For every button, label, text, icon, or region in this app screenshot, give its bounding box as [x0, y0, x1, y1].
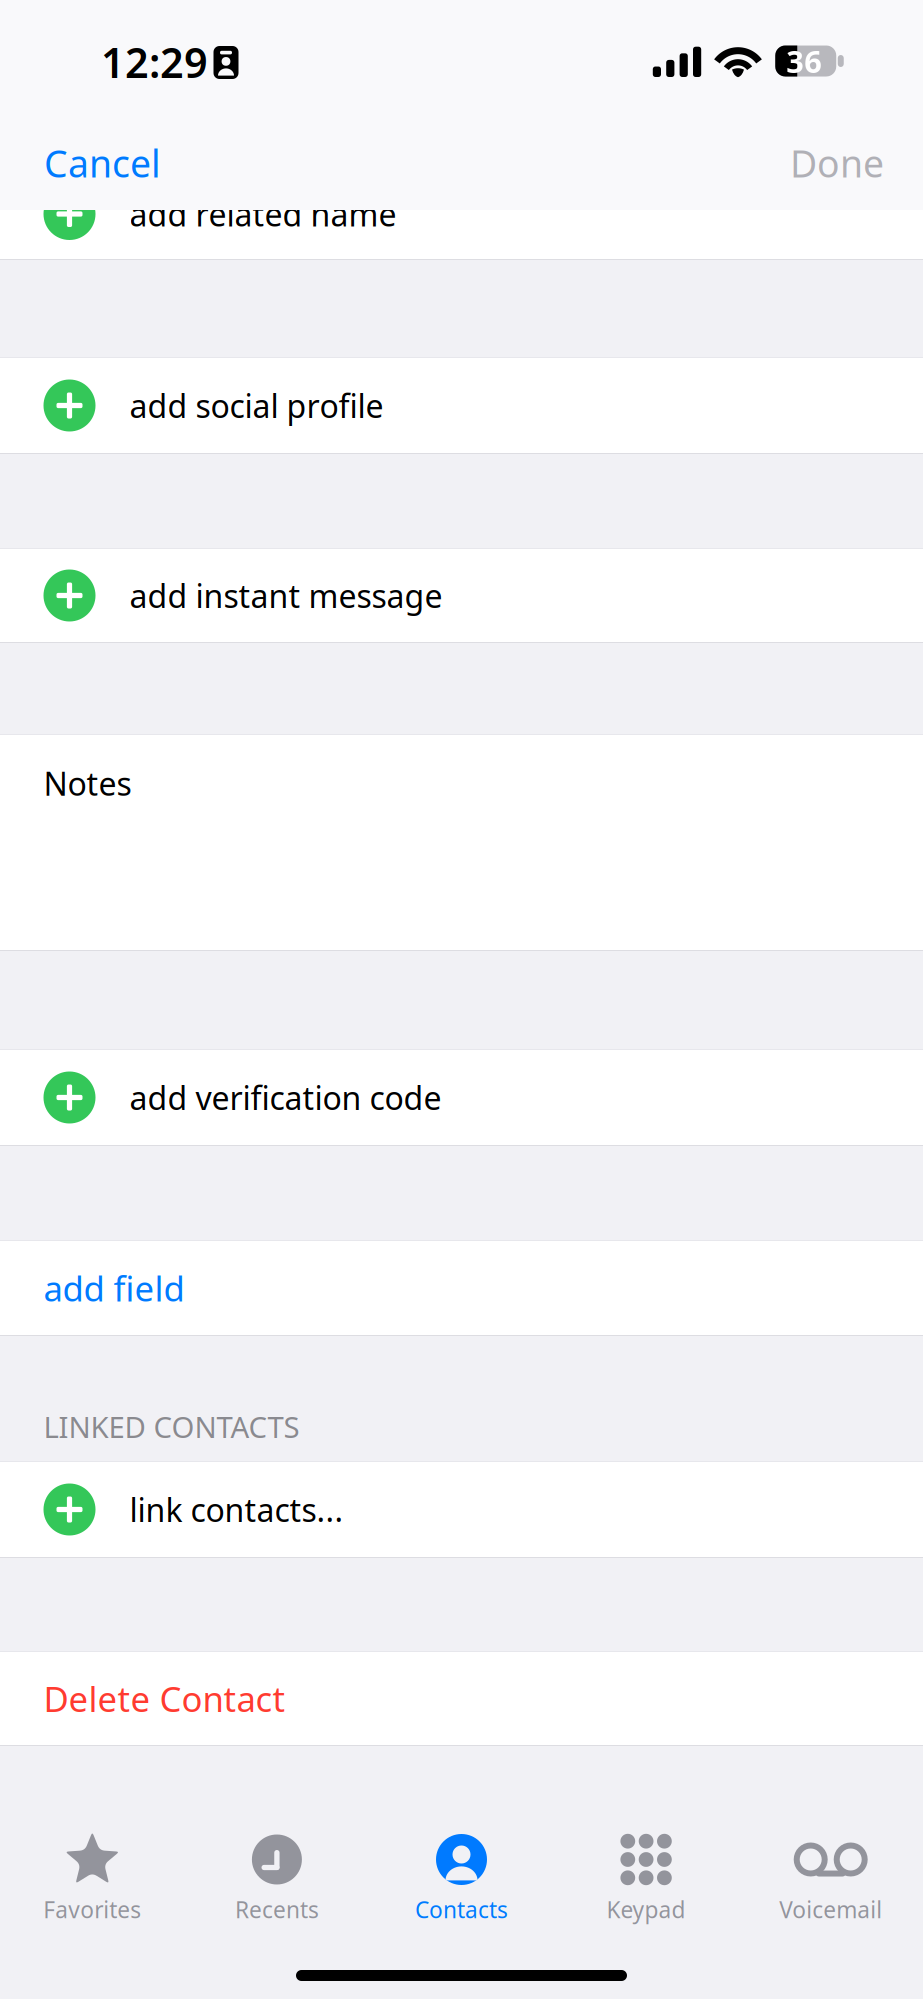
staticText: 36 — [786, 41, 822, 81]
staticText: Notes — [43, 762, 131, 804]
button[interactable]: add social profile — [0, 358, 923, 453]
button[interactable]: Voicemail — [738, 1799, 923, 1939]
staticText: add instant message — [129, 574, 442, 617]
staticText: LINKED CONTACTS — [43, 1407, 299, 1446]
staticText: add related name — [129, 193, 396, 235]
button[interactable]: Favorites — [0, 1799, 185, 1939]
staticText: Keypad — [607, 1894, 686, 1924]
button[interactable]: Delete Contact — [0, 1652, 923, 1745]
staticText: add field — [43, 1265, 184, 1311]
button[interactable]: Keypad — [554, 1799, 738, 1939]
button[interactable]: Done — [766, 114, 923, 206]
staticText: add social profile — [129, 384, 383, 427]
button[interactable]: add instant message — [0, 549, 923, 642]
staticText: Recents — [235, 1894, 319, 1924]
button[interactable]: Recents — [185, 1799, 369, 1939]
staticText: Voicemail — [779, 1894, 882, 1924]
staticText: Favorites — [43, 1894, 141, 1924]
staticText: Contacts — [415, 1894, 508, 1924]
staticText: 12:29 — [101, 35, 208, 89]
staticText: Cancel — [44, 138, 161, 188]
staticText: Done — [790, 138, 884, 188]
button[interactable]: Cancel — [0, 114, 185, 206]
staticText: Delete Contact — [43, 1675, 285, 1721]
button[interactable]: link contacts... — [0, 1462, 923, 1557]
staticText: link contacts... — [129, 1488, 343, 1531]
button[interactable]: Contacts — [369, 1799, 554, 1939]
button[interactable]: add field — [0, 1241, 923, 1335]
button[interactable]: add verification code — [0, 1050, 923, 1145]
staticText: add verification code — [129, 1076, 441, 1119]
